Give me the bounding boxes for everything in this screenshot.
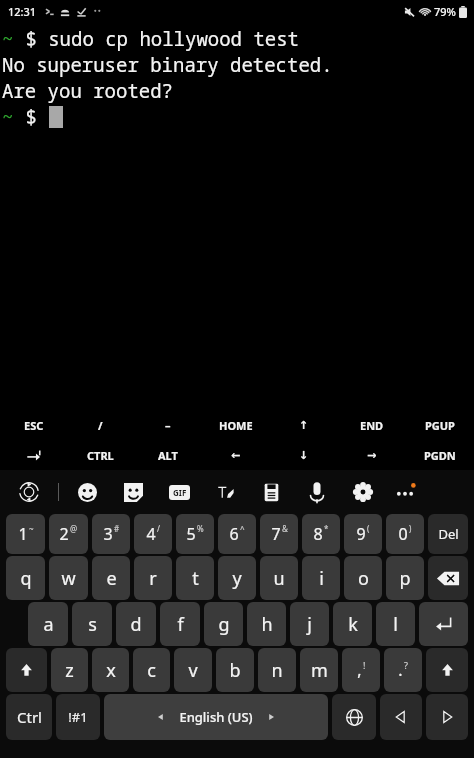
button[interactable]: p bbox=[386, 556, 424, 600]
button[interactable]: Del bbox=[428, 514, 468, 554]
button[interactable]: Space bbox=[104, 694, 328, 740]
button[interactable]: 1 bbox=[6, 514, 45, 554]
button[interactable]: PGDN bbox=[406, 440, 474, 470]
staticText: No superuser binary detected. bbox=[2, 52, 333, 78]
staticText: v bbox=[188, 658, 198, 683]
button[interactable]: 3 bbox=[92, 514, 130, 554]
staticText: * bbox=[324, 523, 329, 534]
button[interactable]: l bbox=[376, 602, 415, 646]
staticText: ~ bbox=[2, 26, 14, 52]
button[interactable]: 8 bbox=[302, 514, 340, 554]
staticText: $ sudo cp hollywood test bbox=[14, 26, 300, 52]
staticText: – bbox=[165, 418, 171, 433]
staticText: l bbox=[393, 612, 398, 637]
button[interactable]: 5 bbox=[176, 514, 214, 554]
button[interactable]: r bbox=[134, 556, 172, 600]
button[interactable]: Cursor right bbox=[426, 694, 468, 740]
button[interactable]: 9 bbox=[344, 514, 382, 554]
button[interactable]: z bbox=[51, 648, 88, 692]
button[interactable]: g bbox=[204, 602, 243, 646]
staticText: PGUP bbox=[425, 418, 455, 433]
button[interactable]: / bbox=[67, 410, 134, 440]
button[interactable]: v bbox=[174, 648, 212, 692]
button[interactable]: k bbox=[333, 602, 372, 646]
button[interactable]: d bbox=[116, 602, 156, 646]
button[interactable]: ↑ bbox=[270, 410, 338, 440]
staticText: English (US) bbox=[179, 708, 253, 726]
button[interactable]: b bbox=[216, 648, 254, 692]
button[interactable]: ALT bbox=[134, 440, 202, 470]
button[interactable]: END bbox=[338, 410, 406, 440]
button[interactable]: Voice input bbox=[299, 474, 335, 510]
button[interactable]: Shift bbox=[6, 648, 47, 692]
button[interactable]: Translate bbox=[10, 473, 48, 511]
button[interactable]: HOME bbox=[202, 410, 270, 440]
staticText: t bbox=[192, 566, 199, 591]
button[interactable]: t bbox=[176, 556, 214, 600]
button[interactable]: GIF bbox=[161, 474, 197, 510]
button[interactable]: CTRL bbox=[67, 440, 134, 470]
staticText: HOME bbox=[219, 418, 253, 433]
button[interactable]: 2 bbox=[49, 514, 88, 554]
button[interactable]: ↓ bbox=[270, 440, 338, 470]
button[interactable]: ← bbox=[202, 440, 270, 470]
staticText: y bbox=[232, 566, 242, 591]
button[interactable]: → bbox=[338, 440, 406, 470]
button[interactable]: 7 bbox=[260, 514, 298, 554]
staticText: , bbox=[357, 659, 362, 681]
button[interactable]: Emoji bbox=[69, 474, 105, 510]
button[interactable]: a bbox=[28, 602, 68, 646]
staticText: m bbox=[311, 658, 328, 683]
button[interactable]: , bbox=[342, 648, 380, 692]
staticText: ( bbox=[367, 523, 370, 534]
button[interactable]: Enter bbox=[419, 602, 468, 646]
button[interactable]: w bbox=[49, 556, 88, 600]
staticText: GIF bbox=[173, 487, 187, 498]
button[interactable]: i bbox=[302, 556, 340, 600]
button[interactable]: – bbox=[134, 410, 202, 440]
button[interactable]: f bbox=[160, 602, 200, 646]
button[interactable]: Clipboard bbox=[253, 474, 289, 510]
staticText: u bbox=[273, 566, 285, 591]
staticText: a bbox=[43, 612, 54, 637]
button[interactable]: j bbox=[290, 602, 329, 646]
button[interactable]: x bbox=[92, 648, 129, 692]
staticText: c bbox=[147, 658, 156, 683]
staticText: PGDN bbox=[424, 448, 456, 463]
button[interactable]: More options bbox=[387, 474, 423, 510]
button[interactable]: !#1 bbox=[56, 694, 100, 740]
staticText: END bbox=[360, 418, 384, 433]
staticText: i bbox=[319, 566, 324, 591]
button[interactable]: Shift bbox=[426, 648, 468, 692]
button[interactable]: ~ bbox=[0, 22, 474, 410]
staticText: r bbox=[149, 566, 157, 591]
button[interactable]: h bbox=[247, 602, 286, 646]
staticText: # bbox=[114, 523, 120, 534]
button[interactable]: TAB bbox=[0, 440, 67, 470]
button[interactable]: u bbox=[260, 556, 298, 600]
button[interactable]: 4 bbox=[134, 514, 172, 554]
staticText: ~ bbox=[29, 523, 34, 534]
button[interactable]: o bbox=[344, 556, 382, 600]
button[interactable]: m bbox=[300, 648, 338, 692]
button[interactable]: 0 bbox=[386, 514, 424, 554]
button[interactable]: Handwriting bbox=[207, 474, 243, 510]
button[interactable]: 6 bbox=[218, 514, 256, 554]
button[interactable]: e bbox=[92, 556, 130, 600]
button[interactable]: n bbox=[258, 648, 296, 692]
button[interactable]: . bbox=[384, 648, 422, 692]
button[interactable]: ESC bbox=[0, 410, 67, 440]
button[interactable]: Settings bbox=[345, 474, 381, 510]
button[interactable]: Backspace bbox=[428, 556, 468, 600]
button[interactable]: Ctrl bbox=[6, 694, 52, 740]
button[interactable]: y bbox=[218, 556, 256, 600]
button[interactable]: Stickers bbox=[115, 474, 151, 510]
button[interactable]: q bbox=[6, 556, 45, 600]
button[interactable]: Cursor left bbox=[380, 694, 422, 740]
staticText: Del bbox=[438, 525, 459, 543]
button[interactable]: c bbox=[133, 648, 170, 692]
button[interactable]: PGUP bbox=[406, 410, 474, 440]
button[interactable]: Change language bbox=[332, 694, 376, 740]
button[interactable]: s bbox=[72, 602, 112, 646]
staticText: 79% bbox=[434, 4, 456, 19]
